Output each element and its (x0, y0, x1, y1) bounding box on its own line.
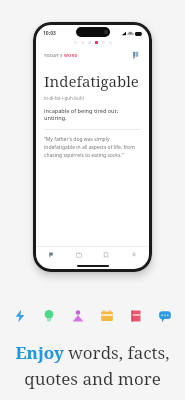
staticText: incapable of being tired out; untiring. (44, 107, 141, 121)
button[interactable]: Facts (39, 306, 59, 326)
button[interactable]: Quotes (155, 306, 175, 326)
button[interactable]: Word of the day (10, 306, 30, 326)
staticText: “My father's dog was simply indefatigabl… (44, 136, 141, 159)
staticText: Enjoy words, facts, (15, 341, 170, 364)
staticText: TODAY'S WORD (44, 53, 78, 58)
button[interactable]: Calendar (97, 306, 117, 326)
staticText: 10:03 (43, 30, 56, 37)
button[interactable]: Grammar (68, 306, 88, 326)
button[interactable]: Dictionary (126, 306, 146, 326)
staticText: in-di-fat-i-guh-buhl (44, 95, 84, 101)
button[interactable]: Quote of the day (129, 49, 141, 61)
button[interactable]: Word of the day (39, 247, 63, 263)
button[interactable]: Saved (94, 247, 118, 263)
button[interactable]: Profile (122, 247, 146, 263)
button[interactable]: Discover (67, 247, 91, 263)
staticText: Indefatigable (44, 71, 139, 91)
staticText: quotes and more (24, 367, 161, 390)
